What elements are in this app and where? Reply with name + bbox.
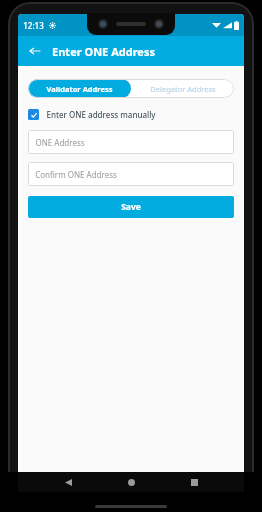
staticText: Delegator Address xyxy=(150,84,216,94)
staticText: Save xyxy=(121,201,141,213)
button[interactable]: Save xyxy=(28,196,234,218)
staticText: Confirm ONE Address xyxy=(35,169,117,180)
staticText: Enter ONE Address xyxy=(52,44,155,59)
button[interactable]: Delegator Address xyxy=(131,79,234,98)
staticText: 12:13 xyxy=(23,20,44,31)
staticText: ONE Address xyxy=(35,137,85,148)
button[interactable]: Validator Address xyxy=(28,79,131,98)
button[interactable]: Back xyxy=(24,40,46,62)
button[interactable]: Home xyxy=(123,474,139,490)
button[interactable]: Recents xyxy=(186,474,202,490)
button[interactable]: Back xyxy=(60,474,76,490)
staticText: Enter ONE address manually xyxy=(46,109,156,120)
button[interactable]: Confirm ONE Address xyxy=(28,162,234,186)
button[interactable]: ONE Address xyxy=(28,130,234,154)
button[interactable]: Enter ONE address manually xyxy=(28,109,234,120)
staticText: Validator Address xyxy=(46,84,113,94)
